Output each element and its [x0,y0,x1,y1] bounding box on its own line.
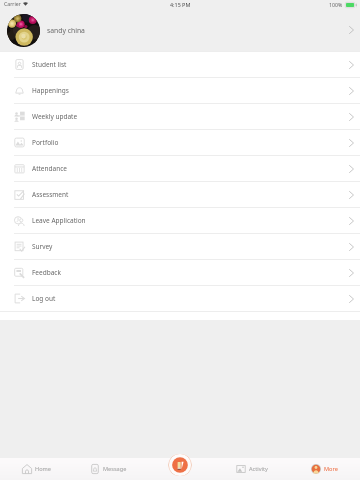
staticText: Weekly update [32,112,78,121]
staticText: Log out [32,294,56,303]
staticText: Message [103,465,127,473]
button[interactable]: Weekly update [0,104,360,129]
button[interactable]: Happenings [0,78,360,103]
button[interactable]: Activity [216,458,288,480]
button[interactable]: Leave Application [0,208,360,233]
button[interactable]: Assessment [0,182,360,207]
staticText: More [324,465,338,473]
button[interactable]: Log out [0,286,360,311]
button[interactable]: Home [0,458,72,480]
staticText: Home [35,465,51,473]
button[interactable]: Student list [0,52,360,77]
staticText: Carrier [4,0,21,7]
button[interactable]: Add note [168,454,192,476]
button[interactable]: Attendance [0,156,360,181]
button[interactable]: Message [72,458,144,480]
button[interactable]: Survey [0,234,360,259]
staticText: 4:15 PM [170,1,191,8]
staticText: Happenings [32,86,69,95]
staticText: Student list [32,60,67,69]
staticText: Feedback [32,268,61,277]
button[interactable]: sandy china [0,9,360,51]
staticText: Activity [249,465,268,473]
staticText: Leave Application [32,216,86,225]
button[interactable]: Portfolio [0,130,360,155]
staticText: Survey [32,242,53,251]
staticText: sandy china [47,26,85,35]
staticText: 100% [329,1,343,8]
staticText: Assessment [32,190,69,199]
staticText: Portfolio [32,138,59,147]
staticText: Attendance [32,164,67,173]
button[interactable]: More [288,458,360,480]
button[interactable]: Feedback [0,260,360,285]
